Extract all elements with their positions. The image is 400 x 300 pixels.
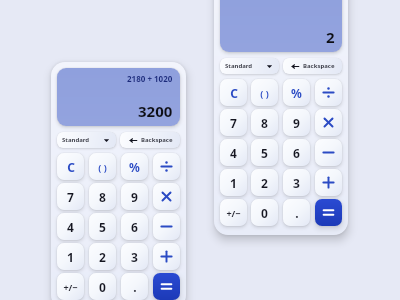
button[interactable]: +/− — [220, 199, 247, 226]
button[interactable]: Divide — [315, 79, 342, 106]
button[interactable]: 9 — [121, 183, 148, 210]
button[interactable]: Divide — [153, 153, 180, 180]
staticText: 4 — [67, 219, 74, 235]
staticText: C — [230, 85, 238, 101]
staticText: 3 — [293, 175, 300, 191]
button[interactable]: Subtract — [315, 139, 342, 166]
staticText: 6 — [131, 219, 138, 235]
staticText: +/− — [226, 207, 241, 219]
button[interactable]: 2180 + 1020 — [64, 73, 173, 121]
button[interactable]: Multiply — [315, 109, 342, 136]
button[interactable]: 8 — [89, 183, 116, 210]
button[interactable]: % — [283, 79, 310, 106]
staticText: . — [295, 205, 299, 221]
button[interactable]: 7 — [220, 109, 247, 136]
staticText: +/− — [63, 281, 78, 293]
button[interactable]: 4 — [220, 139, 247, 166]
button[interactable]: 6 — [283, 139, 310, 166]
button[interactable]: Standard — [57, 132, 116, 148]
staticText: 0 — [99, 279, 106, 295]
staticText: Standard — [225, 62, 253, 70]
button[interactable]: 6 — [121, 213, 148, 240]
staticText: 8 — [99, 189, 106, 205]
staticText: 2 — [261, 175, 268, 191]
button[interactable]: 2 — [89, 243, 116, 270]
staticText: 8 — [261, 115, 268, 131]
staticText: . — [133, 279, 137, 295]
staticText: % — [291, 85, 302, 101]
button[interactable]: 5 — [251, 139, 278, 166]
staticText: 2180 + 1020 — [127, 73, 173, 84]
button[interactable]: 0 — [251, 199, 278, 226]
button[interactable]: 5 — [89, 213, 116, 240]
staticText: 9 — [131, 189, 138, 205]
button[interactable]: +/− — [57, 273, 84, 300]
button[interactable]: Subtract — [153, 213, 180, 240]
button[interactable]: 9 — [283, 109, 310, 136]
button[interactable]: 2 — [227, 0, 335, 47]
staticText: Backspace — [303, 62, 335, 70]
button[interactable]: Backspace — [120, 132, 180, 148]
button[interactable]: 1 — [220, 169, 247, 196]
button[interactable]: Add — [153, 243, 180, 270]
staticText: Standard — [62, 136, 90, 144]
button[interactable]: 7 — [57, 183, 84, 210]
staticText: 0 — [261, 205, 268, 221]
staticText: 6 — [293, 145, 300, 161]
button[interactable]: ( ) — [251, 79, 278, 106]
staticText: 2 — [99, 249, 106, 265]
button[interactable]: 3 — [121, 243, 148, 270]
button[interactable]: 2 — [251, 169, 278, 196]
button[interactable]: 8 — [251, 109, 278, 136]
staticText: ( ) — [98, 161, 107, 173]
staticText: 4 — [230, 145, 237, 161]
staticText: 5 — [99, 219, 106, 235]
button[interactable]: Equals — [153, 273, 180, 300]
staticText: 7 — [230, 115, 237, 131]
staticText: C — [67, 159, 75, 175]
staticText: 1 — [67, 249, 74, 265]
button[interactable]: 3 — [283, 169, 310, 196]
staticText: 3 — [131, 249, 138, 265]
button[interactable]: Add — [315, 169, 342, 196]
button[interactable]: 4 — [57, 213, 84, 240]
button[interactable]: % — [121, 153, 148, 180]
button[interactable]: ( ) — [89, 153, 116, 180]
button[interactable]: C — [57, 153, 84, 180]
button[interactable]: C — [220, 79, 247, 106]
staticText: 7 — [67, 189, 74, 205]
staticText: 2 — [326, 27, 335, 47]
staticText: Backspace — [141, 136, 173, 144]
button[interactable]: . — [283, 199, 310, 226]
button[interactable]: . — [121, 273, 148, 300]
button[interactable]: 0 — [89, 273, 116, 300]
button[interactable]: Standard — [220, 58, 279, 74]
staticText: 5 — [261, 145, 268, 161]
staticText: % — [129, 159, 140, 175]
staticText: 1 — [230, 175, 237, 191]
button[interactable]: Backspace — [283, 58, 342, 74]
staticText: 9 — [293, 115, 300, 131]
staticText: 3200 — [138, 101, 173, 121]
button[interactable]: 1 — [57, 243, 84, 270]
button[interactable]: Multiply — [153, 183, 180, 210]
button[interactable]: Equals — [315, 199, 342, 226]
staticText: ( ) — [260, 87, 269, 99]
